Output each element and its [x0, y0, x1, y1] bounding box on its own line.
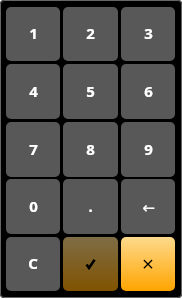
button[interactable]: Confirm	[63, 237, 118, 291]
button[interactable]: .	[63, 179, 118, 234]
button[interactable]: 4	[6, 64, 60, 119]
button[interactable]: 6	[121, 64, 175, 119]
button[interactable]: Backspace	[121, 179, 175, 234]
button[interactable]: 9	[121, 122, 175, 177]
staticText: 1	[29, 23, 38, 43]
button[interactable]: 2	[63, 7, 118, 61]
staticText: ✕	[141, 255, 155, 274]
button[interactable]: 0	[6, 179, 60, 234]
staticText: 9	[144, 139, 153, 159]
staticText: 4	[29, 81, 38, 101]
button[interactable]: 8	[63, 122, 118, 177]
staticText: 5	[86, 81, 95, 101]
staticText: 3	[144, 23, 153, 43]
staticText: 6	[144, 81, 153, 101]
staticText: .	[88, 196, 93, 216]
staticText: C	[28, 253, 38, 273]
staticText: 2	[86, 23, 95, 43]
button[interactable]: 7	[6, 122, 60, 177]
button[interactable]: 5	[63, 64, 118, 119]
staticText: 0	[29, 196, 38, 216]
button[interactable]: Cancel	[121, 237, 175, 291]
button[interactable]: 3	[121, 7, 175, 61]
staticText: ←	[142, 199, 155, 216]
button[interactable]: 1	[6, 7, 60, 61]
staticText: 8	[86, 139, 95, 159]
button[interactable]: C	[6, 237, 60, 291]
staticText: 7	[29, 139, 38, 159]
